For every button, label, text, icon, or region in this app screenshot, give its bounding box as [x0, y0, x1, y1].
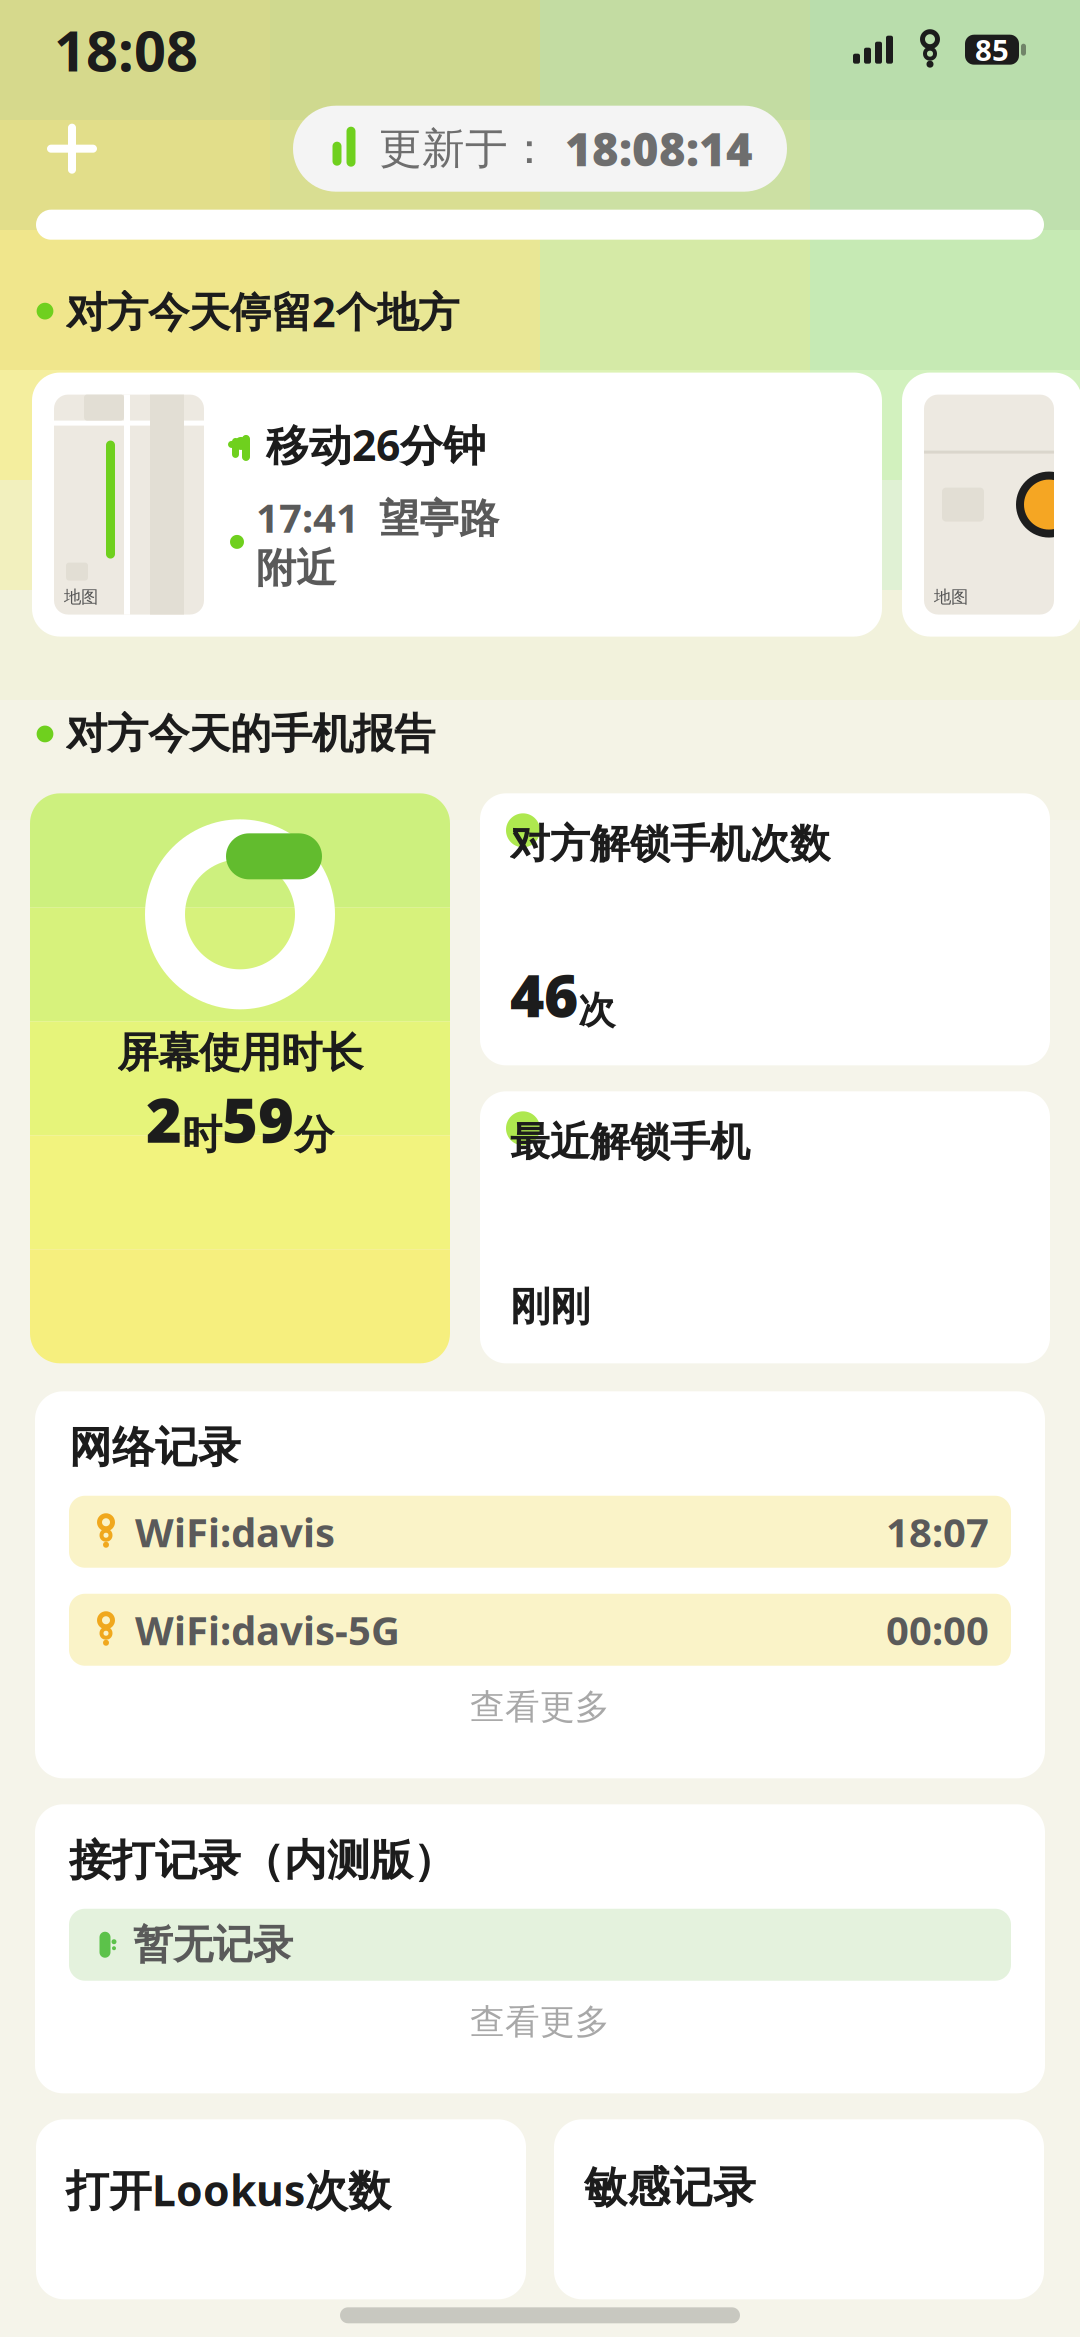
- button[interactable]: 更新于：: [293, 106, 787, 192]
- staticText: 对方解锁手机次数: [510, 819, 830, 868]
- staticText: 00:00: [886, 1603, 989, 1656]
- staticText: 时: [182, 1110, 222, 1159]
- staticText: 查看更多: [470, 1686, 610, 1728]
- button[interactable]: WiFi:davis-5G: [69, 1594, 1011, 1666]
- staticText: 18:07: [886, 1505, 989, 1558]
- staticText: 屏幕使用时长: [117, 1027, 363, 1078]
- button[interactable]: 对方解锁手机次数: [480, 793, 1050, 1065]
- button[interactable]: 关闭: [40, 117, 104, 181]
- staticText: 更新于：: [379, 122, 551, 175]
- staticText: 85: [975, 30, 1009, 69]
- button[interactable]: 最近解锁手机: [480, 1091, 1050, 1363]
- button[interactable]: [32, 373, 882, 637]
- button[interactable]: 查看更多: [69, 1676, 1011, 1738]
- staticText: 分: [294, 1110, 334, 1159]
- button[interactable]: 查看更多: [69, 1991, 1011, 2053]
- staticText: 2: [146, 1078, 182, 1159]
- staticText: 敏感记录: [584, 2161, 756, 2214]
- button[interactable]: 屏幕使用时长: [30, 793, 450, 1363]
- staticText: 移动26分钟: [266, 416, 486, 473]
- staticText: WiFi:davis: [135, 1505, 335, 1558]
- staticText: 18:08: [54, 12, 198, 87]
- staticText: 查看更多: [470, 2001, 610, 2043]
- staticText: 暂无记录: [133, 1920, 293, 1969]
- staticText: 刚刚: [510, 1282, 590, 1331]
- button[interactable]: 另一个停留地点: [902, 373, 1080, 637]
- staticText: 网络记录: [69, 1421, 241, 1474]
- staticText: 46: [510, 955, 578, 1033]
- staticText: 地图: [934, 586, 968, 608]
- button[interactable]: 暂无记录: [69, 1909, 1011, 1981]
- staticText: 打开Lookus次数: [66, 2161, 391, 2218]
- staticText: 对方今天的手机报告: [66, 709, 435, 759]
- staticText: 接打记录（内测版）: [69, 1834, 456, 1887]
- staticText: 17:41 望亭路 附近: [256, 491, 499, 593]
- staticText: 18:08:14: [565, 119, 753, 179]
- button[interactable]: 打开Lookus次数: [36, 2119, 526, 2299]
- button[interactable]: 敏感记录: [554, 2119, 1044, 2299]
- staticText: 地图: [64, 586, 98, 608]
- staticText: WiFi:davis-5G: [135, 1603, 400, 1656]
- staticText: 对方今天停留2个地方: [66, 284, 459, 339]
- button[interactable]: WiFi:davis: [69, 1496, 1011, 1568]
- staticText: 次: [578, 987, 615, 1033]
- staticText: 最近解锁手机: [510, 1117, 750, 1166]
- staticText: 59: [222, 1078, 294, 1159]
